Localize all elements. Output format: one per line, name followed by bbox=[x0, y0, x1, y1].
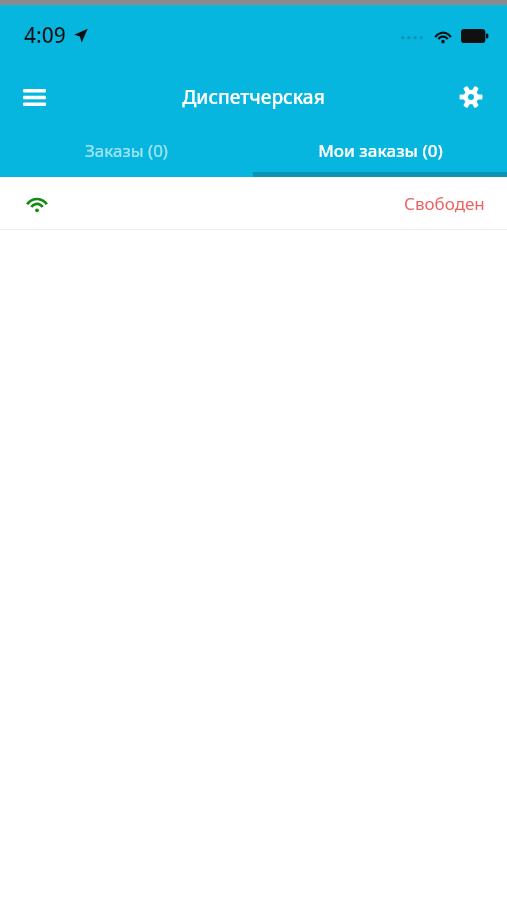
staticText: Свободен bbox=[404, 192, 485, 215]
staticText: Мои заказы (0) bbox=[318, 139, 443, 162]
button[interactable]: Мои заказы (0) bbox=[253, 128, 507, 172]
staticText: Заказы (0) bbox=[85, 139, 168, 162]
staticText: 4:09 bbox=[24, 21, 66, 50]
button[interactable]: Settings bbox=[447, 73, 495, 121]
staticText: Диспетчерская bbox=[182, 84, 325, 110]
button[interactable]: Open navigation menu bbox=[10, 73, 58, 121]
other: Connection status bbox=[22, 188, 52, 218]
button[interactable]: Connection status bbox=[0, 177, 507, 229]
button[interactable]: Заказы (0) bbox=[0, 128, 253, 172]
